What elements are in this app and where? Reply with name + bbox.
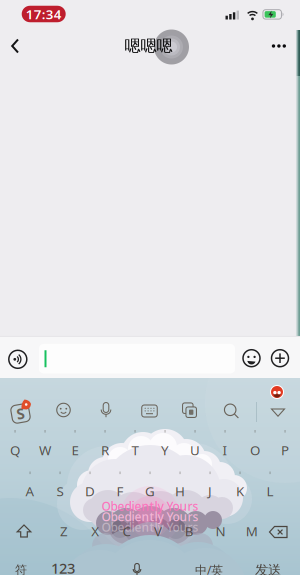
button[interactable]: Stickers — [54, 400, 73, 419]
staticText: X — [91, 522, 99, 540]
button[interactable]: O — [242, 435, 268, 465]
button[interactable]: W — [32, 435, 58, 465]
button[interactable]: Send — [250, 559, 286, 575]
button[interactable]: Y — [152, 435, 178, 465]
button[interactable]: More — [269, 36, 287, 56]
staticText: Z — [60, 522, 68, 540]
button[interactable]: Screen recording 17:34 — [22, 6, 66, 22]
button[interactable]: B — [176, 516, 202, 546]
button[interactable]: Hide keyboard — [269, 404, 287, 421]
button[interactable]: Keyboard layout — [140, 401, 159, 420]
button[interactable]: Message input — [39, 344, 235, 373]
button[interactable]: J — [197, 476, 223, 506]
staticText: H — [175, 482, 185, 500]
button[interactable]: Z — [51, 516, 77, 546]
staticText: Obediently Yours — [101, 508, 198, 524]
staticText: 17:34 — [26, 5, 62, 23]
button[interactable]: Shift — [11, 520, 37, 542]
button[interactable]: Sogou keyboard — [8, 401, 32, 425]
staticText: B — [185, 522, 194, 540]
staticText: Obediently Yours — [101, 498, 198, 514]
button[interactable]: Back — [0, 34, 30, 58]
button[interactable]: C — [114, 516, 140, 546]
button[interactable]: Q — [2, 435, 28, 465]
staticText: 123 — [51, 558, 75, 575]
button[interactable]: Voice input — [96, 401, 115, 420]
button[interactable]: D — [77, 476, 103, 506]
staticText: Y — [161, 441, 169, 459]
staticText: Obediently Yours — [101, 519, 198, 535]
button[interactable]: Chinese English toggle — [192, 559, 226, 575]
button[interactable]: H — [167, 476, 193, 506]
staticText: D — [85, 482, 95, 500]
staticText: O — [250, 441, 260, 459]
staticText: E — [71, 441, 78, 459]
button[interactable]: Space, voice input — [84, 561, 189, 575]
button[interactable]: L — [257, 476, 283, 506]
button[interactable]: E — [62, 435, 88, 465]
button[interactable]: More functions — [267, 346, 292, 371]
staticText: T — [131, 441, 138, 459]
staticText: S — [16, 404, 24, 423]
staticText: A — [25, 482, 34, 500]
staticText: V — [154, 522, 162, 540]
button[interactable]: Delete — [266, 521, 290, 543]
button[interactable]: R — [92, 435, 118, 465]
staticText: G — [145, 482, 155, 500]
staticText: F — [116, 482, 123, 500]
staticText: Q — [10, 441, 20, 459]
button[interactable]: U — [182, 435, 208, 465]
staticText: 嗯嗯嗯 — [124, 36, 172, 56]
button[interactable]: Assistant — [270, 385, 284, 399]
staticText: U — [190, 441, 200, 459]
button[interactable]: Hold to talk — [4, 345, 32, 373]
button[interactable]: A — [17, 476, 43, 506]
button[interactable]: K — [227, 476, 253, 506]
staticText: R — [101, 441, 109, 459]
button[interactable]: I — [212, 435, 238, 465]
staticText: C — [123, 522, 131, 540]
staticText: K — [236, 482, 244, 500]
staticText: 符 — [15, 563, 27, 575]
staticText: J — [208, 482, 212, 500]
button[interactable]: Search — [222, 402, 241, 421]
button[interactable]: F — [107, 476, 133, 506]
button[interactable]: Numbers — [46, 557, 80, 575]
button[interactable]: G — [137, 476, 163, 506]
button[interactable]: X — [82, 516, 108, 546]
button[interactable]: S — [47, 476, 73, 506]
button[interactable]: Clipboard — [180, 401, 199, 420]
staticText: S — [56, 482, 63, 500]
button[interactable]: Symbols — [6, 559, 36, 575]
button[interactable]: T — [122, 435, 148, 465]
staticText: P — [281, 441, 289, 459]
staticText: M — [246, 522, 258, 540]
staticText: W — [39, 441, 51, 459]
staticText: I — [222, 441, 227, 459]
button[interactable]: V — [145, 516, 171, 546]
staticText: N — [215, 522, 225, 540]
staticText: L — [266, 482, 273, 500]
button[interactable]: Emoji — [239, 346, 264, 371]
button[interactable]: AssistiveTouch — [154, 29, 189, 64]
staticText: 中/英 — [195, 562, 223, 575]
button[interactable]: N — [207, 516, 233, 546]
staticText: 发送 — [255, 562, 281, 575]
button[interactable]: M — [239, 516, 265, 546]
button[interactable]: P — [272, 435, 298, 465]
